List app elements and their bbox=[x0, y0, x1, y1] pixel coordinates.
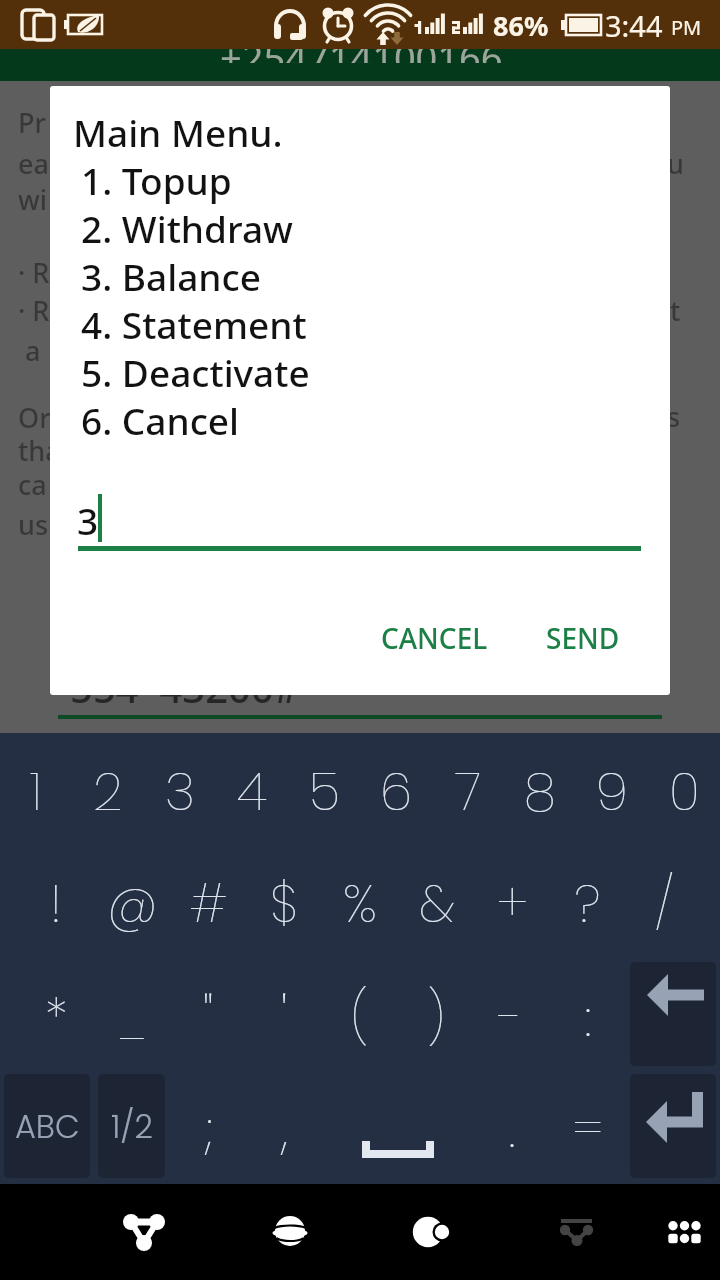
button[interactable]: Recent apps bbox=[397, 1197, 465, 1265]
staticText: 5 bbox=[309, 755, 340, 828]
staticText: s bbox=[667, 398, 681, 435]
button[interactable]: ) bbox=[400, 972, 472, 1062]
staticText: 3 bbox=[77, 495, 99, 545]
button[interactable]: 4 bbox=[216, 746, 288, 836]
staticText: ea bbox=[18, 145, 49, 182]
staticText: Main Menu. bbox=[73, 107, 283, 157]
button[interactable]: 2 bbox=[72, 746, 144, 836]
staticText: Pr bbox=[18, 104, 46, 141]
button[interactable]: ' bbox=[248, 972, 320, 1062]
staticText: & bbox=[419, 867, 454, 940]
button[interactable]: 8 bbox=[504, 746, 576, 836]
button[interactable]: All apps bbox=[640, 1197, 708, 1265]
staticText: CANCEL bbox=[381, 619, 488, 657]
staticText: ? bbox=[575, 867, 601, 940]
staticText: SEND bbox=[546, 619, 620, 657]
button[interactable]: " bbox=[172, 972, 244, 1062]
staticText: ( bbox=[351, 981, 369, 1054]
staticText: 0 bbox=[669, 755, 700, 828]
staticText: 6. Cancel bbox=[81, 395, 240, 445]
staticText: a bbox=[18, 332, 41, 369]
button[interactable]: ; bbox=[173, 1083, 245, 1173]
button[interactable]: 1/2 bbox=[98, 1074, 165, 1178]
button[interactable]: ? bbox=[552, 858, 624, 948]
button[interactable]: ! bbox=[20, 858, 92, 948]
button[interactable]: 5 bbox=[288, 746, 360, 836]
button[interactable]: 3 bbox=[144, 746, 216, 836]
staticText: ' bbox=[281, 981, 288, 1054]
button[interactable]: = bbox=[552, 1083, 624, 1173]
staticText: - bbox=[500, 981, 524, 1054]
button[interactable]: . bbox=[476, 1083, 548, 1173]
staticText: 7 bbox=[455, 755, 482, 828]
staticText: wi bbox=[18, 181, 48, 218]
button[interactable]: ( bbox=[324, 972, 396, 1062]
staticText: +254714100166 bbox=[220, 31, 503, 63]
button[interactable]: 6 bbox=[360, 746, 432, 836]
staticText: 3 bbox=[165, 755, 195, 828]
staticText: PM bbox=[671, 14, 702, 41]
staticText: 4 bbox=[237, 755, 267, 828]
staticText: t bbox=[670, 292, 681, 329]
button[interactable]: Enter bbox=[630, 1074, 716, 1178]
button[interactable]: 7 bbox=[432, 746, 504, 836]
button[interactable]: , bbox=[249, 1083, 321, 1173]
staticText: ca bbox=[18, 466, 47, 503]
staticText: = bbox=[573, 1092, 603, 1165]
button[interactable]: _ bbox=[96, 972, 168, 1062]
button[interactable]: ABC bbox=[4, 1074, 90, 1178]
staticText: u bbox=[667, 145, 684, 182]
button[interactable]: 1 bbox=[0, 746, 72, 836]
staticText: / bbox=[655, 867, 674, 940]
button[interactable]: * bbox=[20, 972, 92, 1062]
staticText: @ bbox=[107, 867, 158, 940]
staticText: ) bbox=[427, 981, 445, 1054]
staticText: · R bbox=[18, 292, 50, 329]
staticText: 2. Withdraw bbox=[81, 203, 293, 253]
staticText: 86% bbox=[493, 7, 549, 44]
staticText: tha bbox=[18, 432, 61, 469]
staticText: _ bbox=[118, 981, 146, 1054]
button[interactable]: - bbox=[476, 972, 548, 1062]
staticText: 1. Topup bbox=[81, 155, 232, 205]
button[interactable]: Backspace bbox=[630, 962, 716, 1066]
staticText: ! bbox=[50, 867, 62, 940]
staticText: 5. Deactivate bbox=[81, 347, 310, 397]
button[interactable]: # bbox=[172, 858, 244, 948]
staticText: us bbox=[18, 506, 49, 543]
staticText: 554 43200# bbox=[70, 660, 300, 714]
staticText: 6 bbox=[380, 755, 412, 828]
button[interactable]: 0 bbox=[648, 746, 720, 836]
staticText: ABC bbox=[15, 1104, 80, 1149]
staticText: . bbox=[509, 1092, 516, 1165]
button[interactable]: CANCEL bbox=[347, 606, 522, 670]
staticText: · R bbox=[18, 254, 50, 291]
button[interactable]: Home bbox=[256, 1197, 324, 1265]
button[interactable]: % bbox=[324, 858, 396, 948]
button[interactable]: $ bbox=[248, 858, 320, 948]
button[interactable]: @ bbox=[96, 858, 168, 948]
button[interactable]: Space bbox=[330, 1088, 470, 1178]
button[interactable]: 9 bbox=[576, 746, 648, 836]
staticText: 1 bbox=[30, 755, 42, 828]
button[interactable]: / bbox=[628, 858, 700, 948]
staticText: : bbox=[585, 981, 592, 1054]
staticText: 9 bbox=[596, 755, 628, 828]
staticText: # bbox=[189, 867, 228, 940]
button[interactable]: Hide keyboard bbox=[542, 1197, 610, 1265]
staticText: " bbox=[203, 981, 214, 1054]
staticText: % bbox=[343, 867, 377, 940]
button[interactable]: Back bbox=[111, 1197, 179, 1265]
button[interactable]: & bbox=[400, 858, 472, 948]
staticText: Or bbox=[18, 399, 51, 436]
staticText: 3:44 bbox=[605, 6, 663, 45]
button[interactable]: : bbox=[552, 972, 624, 1062]
staticText: 3. Balance bbox=[81, 251, 261, 301]
button[interactable]: + bbox=[476, 858, 548, 948]
staticText: * bbox=[45, 981, 68, 1054]
button[interactable]: SEND bbox=[518, 606, 647, 670]
staticText: 8 bbox=[524, 755, 556, 828]
staticText: , bbox=[282, 1092, 288, 1165]
staticText: + bbox=[497, 867, 528, 940]
staticText: ; bbox=[205, 1092, 213, 1165]
